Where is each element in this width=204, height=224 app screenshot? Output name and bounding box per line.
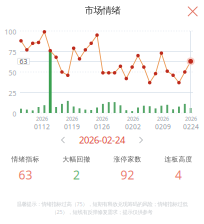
button[interactable]: 涨停家数 — [102, 153, 153, 185]
staticText: 4 — [175, 167, 182, 183]
staticText: 92 — [120, 167, 134, 183]
staticText: 大幅回撤 — [62, 155, 90, 163]
staticText: 2026 — [127, 115, 139, 122]
staticText: 2026 — [36, 115, 48, 122]
button[interactable]: 关闭 — [183, 1, 203, 21]
staticText: 2026-02-24 — [79, 134, 125, 146]
button[interactable]: 连板高度 — [153, 153, 204, 185]
staticText: （25），短线有反弹修复需求；提示仅供参考 — [51, 208, 152, 215]
staticText: 2026 — [96, 115, 108, 122]
staticText: 63 — [18, 167, 32, 183]
staticText: 75 — [8, 48, 16, 57]
staticText: 63 — [20, 57, 28, 66]
staticText: 市场情绪 — [84, 5, 120, 16]
staticText: 2026 — [185, 115, 197, 122]
staticText: 0112 — [34, 122, 50, 131]
staticText: 100 — [4, 28, 16, 36]
staticText: 25 — [8, 89, 16, 98]
staticText: 0 — [12, 110, 16, 118]
staticText: 0202 — [125, 122, 141, 131]
staticText: 2 — [73, 167, 80, 183]
staticText: 情绪指标 — [11, 155, 39, 163]
staticText: 2026 — [66, 115, 78, 122]
staticText: 2026 — [157, 115, 169, 122]
button[interactable]: 后一天 — [135, 134, 147, 146]
staticText: 温馨提示：情绪指标过高（75），短期有释放兑现筹码的风险；情绪指标过低 — [16, 200, 187, 208]
staticText: 涨停家数 — [113, 155, 141, 163]
staticText: 0126 — [94, 122, 110, 131]
staticText: 连板高度 — [164, 155, 192, 163]
staticText: 50 — [8, 69, 16, 77]
staticText: 0209 — [155, 122, 171, 131]
button[interactable]: 前一天 — [57, 134, 69, 146]
staticText: 0119 — [64, 122, 80, 131]
staticText: 0224 — [183, 122, 199, 131]
button[interactable]: 情绪指标 — [0, 153, 51, 185]
button[interactable]: 大幅回撤 — [51, 153, 102, 185]
